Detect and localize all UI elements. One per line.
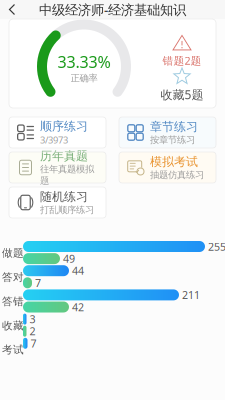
button[interactable]: 历年真题 [9,152,106,183]
staticText: 顺序练习 [40,119,88,134]
staticText: 往年真题模拟题 [40,163,94,186]
staticText: 255 [208,239,225,254]
button[interactable]: 顺序练习 [9,117,106,148]
staticText: 打乱顺序练习 [40,204,94,216]
staticText: 按章节练习 [150,134,195,146]
staticText: 随机练习 [40,189,88,204]
staticText: 收藏5题 [160,86,203,102]
staticText: 44 [72,264,84,278]
staticText: 3/3973 [40,134,68,146]
staticText: 211 [182,288,200,302]
staticText: 中级经济师-经济基础知识 [39,1,186,18]
staticText: 7 [30,336,36,350]
staticText: 49 [63,251,75,266]
staticText: 考试 [2,343,24,356]
staticText: 42 [72,300,84,314]
staticText: 7 [35,276,41,290]
staticText: 做题 [2,246,24,259]
staticText: 33.33% [57,51,110,72]
staticText: 抽题仿真练习 [150,169,204,181]
button[interactable]: 错题2题 [154,34,210,68]
staticText: 模拟考试 [150,154,198,169]
button[interactable]: 收藏5题 [154,67,210,102]
staticText: 3 [29,312,35,326]
staticText: 错题2题 [162,53,201,68]
staticText: 2 [29,324,35,338]
staticText: 收藏 [2,319,24,332]
staticText: 历年真题 [40,149,88,163]
button[interactable]: 模拟考试 [119,152,216,183]
button[interactable]: 返回 [0,0,24,19]
staticText: 正确率 [70,72,97,84]
staticText: 答错 [2,295,24,308]
button[interactable]: 随机练习 [9,187,106,218]
staticText: 章节练习 [150,119,198,134]
staticText: 答对 [2,271,24,284]
button[interactable]: 章节练习 [119,117,216,148]
